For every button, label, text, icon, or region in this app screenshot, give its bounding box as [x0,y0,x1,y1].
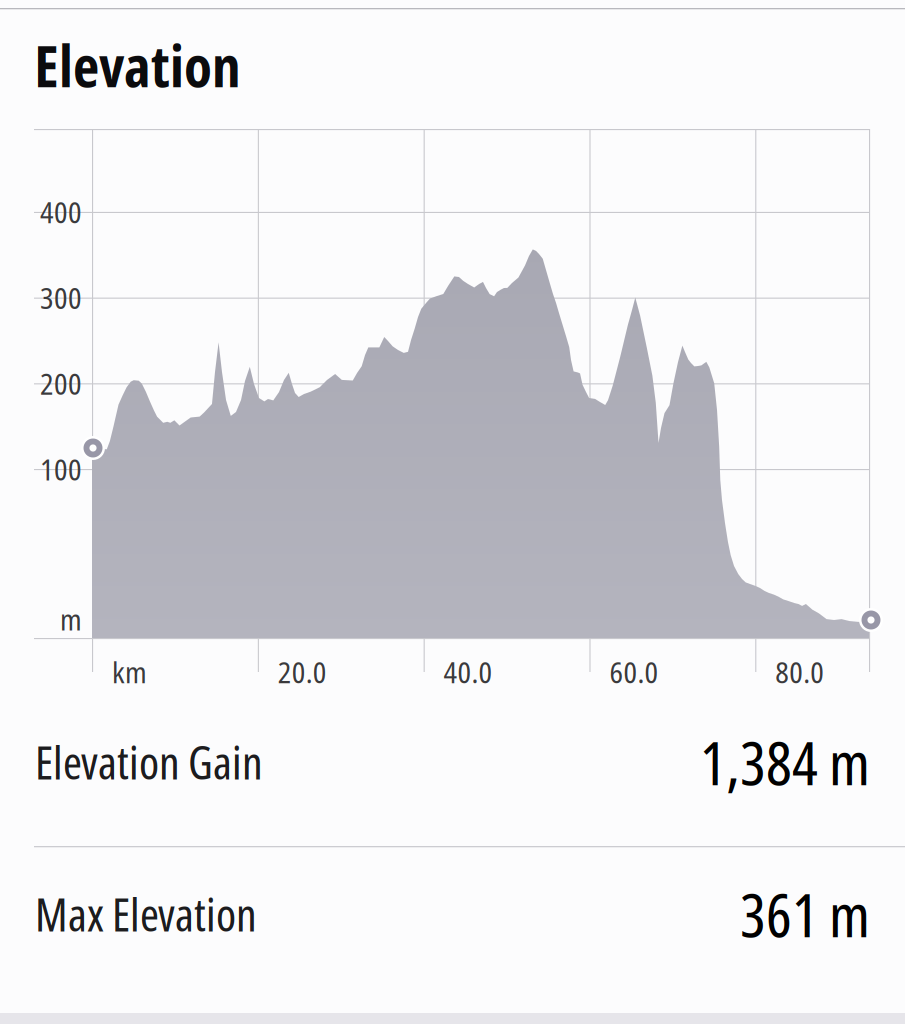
staticText: Elevation Gain [35,731,263,793]
button[interactable]: Max Elevation [0,874,905,954]
staticText: 40.0 [444,652,493,692]
staticText: 60.0 [609,652,658,692]
staticText: Max Elevation [35,883,257,945]
staticText: 100 [40,449,82,489]
staticText: 400 [40,192,82,232]
staticText: 1,384 m [700,721,870,803]
staticText: 20.0 [278,652,327,692]
staticText: m [60,599,82,639]
staticText: Elevation [34,26,241,104]
staticText: 361 m [740,873,870,955]
staticText: km [112,652,147,692]
staticText: 200 [40,363,82,403]
staticText: 80.0 [775,652,824,692]
staticText: 300 [40,278,82,318]
button[interactable]: Elevation Gain [0,722,905,802]
